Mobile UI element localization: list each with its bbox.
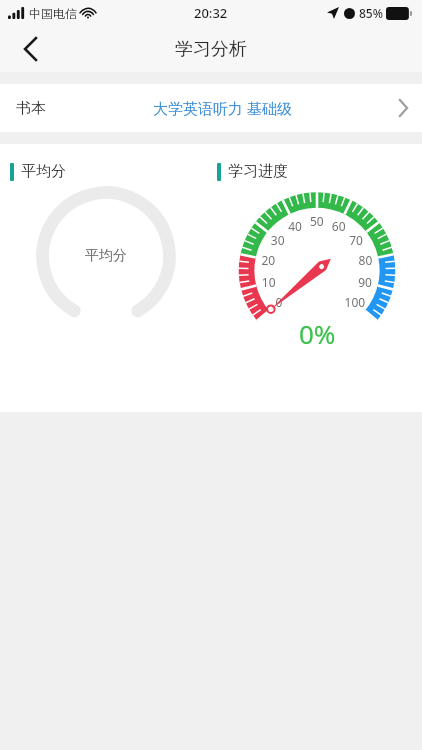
- button[interactable]: 书本: [0, 84, 422, 132]
- staticText: 大学英语听力 基础级: [153, 98, 292, 118]
- button[interactable]: Back: [10, 29, 50, 69]
- staticText: 中国电信: [29, 6, 77, 21]
- staticText: 学习进度: [228, 162, 288, 181]
- staticText: 平均分: [85, 247, 127, 265]
- staticText: 学习分析: [175, 38, 247, 61]
- staticText: 平均分: [21, 162, 66, 181]
- staticText: 0%: [299, 316, 336, 351]
- staticText: 85%: [359, 5, 383, 21]
- staticText: 书本: [16, 99, 46, 118]
- staticText: 20:32: [194, 4, 228, 22]
